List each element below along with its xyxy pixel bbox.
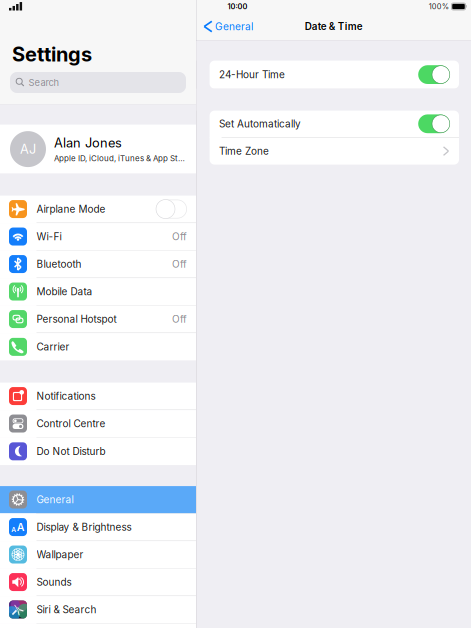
button[interactable]: Wi-Fi [0, 223, 196, 251]
button[interactable]: Airplane Mode [0, 196, 196, 223]
staticText: General [36, 493, 73, 506]
staticText: A [11, 525, 16, 533]
staticText: Time Zone [219, 145, 269, 157]
button[interactable]: Do Not Disturb [0, 438, 196, 465]
staticText: A [17, 521, 25, 533]
staticText: Off [172, 313, 187, 325]
staticText: Carrier [36, 341, 69, 353]
staticText: Date & Time [305, 20, 363, 32]
button[interactable]: Carrier [0, 333, 196, 361]
button[interactable]: General [197, 13, 253, 40]
staticText: Display & Brightness [36, 521, 131, 533]
button[interactable]: 24-Hour Time [210, 61, 459, 88]
button[interactable]: General [0, 486, 196, 514]
staticText: Mobile Data [36, 285, 92, 298]
button[interactable]: Bluetooth [0, 251, 196, 278]
staticText: Control Centre [36, 417, 105, 430]
button[interactable]: Wallpaper [0, 541, 196, 569]
button[interactable]: Sounds [0, 569, 196, 596]
button[interactable]: Mobile Data [0, 278, 196, 306]
staticText: Personal Hotspot [36, 313, 116, 325]
button[interactable]: Personal Hotspot [0, 306, 196, 333]
button[interactable]: Set Automatically [210, 111, 459, 138]
staticText: Apple ID, iCloud, iTunes & App St… [54, 153, 185, 163]
staticText: Wallpaper [36, 548, 83, 561]
staticText: Bluetooth [36, 258, 81, 270]
staticText: Notifications [36, 390, 95, 402]
staticText: Siri & Search [36, 603, 96, 616]
staticText: Settings [12, 42, 92, 66]
button[interactable]: Notifications [0, 383, 196, 410]
button[interactable]: Siri & Search [0, 596, 196, 624]
staticText: Off [172, 230, 187, 243]
button[interactable]: A [0, 514, 196, 541]
staticText: Off [172, 258, 187, 270]
staticText: Airplane Mode [36, 203, 105, 215]
staticText: Search [29, 77, 60, 88]
staticText: 100% [429, 2, 449, 11]
button[interactable]: Control Centre [0, 410, 196, 438]
staticText: General [215, 20, 253, 33]
staticText: Alan Jones [54, 135, 122, 151]
staticText: Set Automatically [219, 118, 301, 130]
staticText: AJ [20, 141, 36, 157]
staticText: 10:00 [228, 2, 248, 11]
staticText: 24-Hour Time [219, 69, 285, 81]
button[interactable]: Time Zone [210, 138, 459, 165]
button[interactable]: AJ [0, 125, 196, 174]
staticText: Do Not Disturb [36, 445, 105, 457]
staticText: Wi-Fi [36, 230, 61, 243]
staticText: Sounds [36, 576, 71, 588]
